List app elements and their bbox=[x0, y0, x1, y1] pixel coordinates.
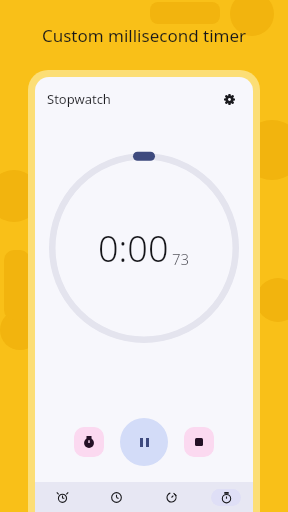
button[interactable]: Settings bbox=[217, 87, 241, 111]
button[interactable]: Stopwatch bbox=[198, 482, 253, 512]
button[interactable]: Lap bbox=[74, 427, 104, 457]
staticText: Custom millisecond timer bbox=[0, 24, 288, 47]
staticText: Stopwatch bbox=[47, 90, 111, 108]
button[interactable]: Alarm bbox=[35, 482, 89, 512]
button[interactable]: Stop bbox=[184, 427, 214, 457]
staticText: 73 bbox=[172, 249, 190, 269]
button[interactable]: Clock bbox=[89, 482, 143, 512]
button[interactable]: Timer bbox=[143, 482, 198, 512]
staticText: 0:00 bbox=[98, 224, 169, 273]
button[interactable]: Pause bbox=[120, 418, 168, 466]
